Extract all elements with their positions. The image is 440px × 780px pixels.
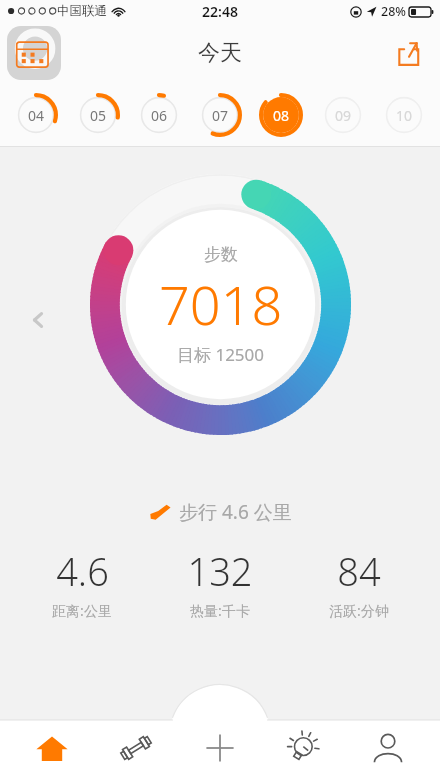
button[interactable]: 4.6 [17,545,147,620]
button[interactable]: Share [390,35,426,71]
button[interactable]: 08 [256,90,306,140]
button[interactable]: 09 [318,90,368,140]
staticText: 08 [273,106,290,125]
button[interactable]: 05 [73,90,123,140]
staticText: 06 [151,106,168,125]
staticText: 05 [90,106,107,125]
button[interactable]: 07 [195,90,245,140]
staticText: 4.6 [56,545,109,597]
staticText: 步行 4.6 公里 [179,499,292,525]
button[interactable]: 10 [379,90,429,140]
staticText: 28% [381,3,406,20]
staticText: 步数 [204,244,238,265]
staticText: 活跃:分钟 [329,601,389,620]
button[interactable]: Previous [20,302,56,338]
staticText: 10 [396,106,413,125]
staticText: 09 [335,106,352,125]
button[interactable]: Discover [272,716,336,780]
staticText: 今天 [198,39,242,67]
button[interactable]: Add [188,716,252,780]
staticText: 目标 12500 [177,343,265,366]
staticText: 07 [212,106,229,125]
staticText: 热量:千卡 [190,601,250,620]
button[interactable]: 04 [11,90,61,140]
staticText: 22:48 [202,2,238,21]
button[interactable]: Workouts [104,716,168,780]
button[interactable]: 06 [134,90,184,140]
staticText: 中国联通 [57,3,107,19]
button[interactable]: Profile [356,716,420,780]
button[interactable]: App icon [7,26,61,80]
button[interactable]: 132 [155,545,285,620]
button[interactable]: 84 [294,545,424,620]
button[interactable]: Home [20,716,84,780]
staticText: 84 [337,545,381,597]
staticText: 132 [187,545,253,597]
staticText: 7018 [159,267,283,341]
staticText: 04 [28,106,45,125]
staticText: 距离:公里 [52,601,112,620]
